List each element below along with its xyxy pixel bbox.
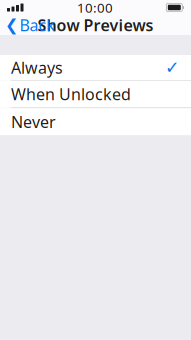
staticText: Always: [11, 57, 63, 78]
button[interactable]: ❮: [0, 11, 55, 39]
staticText: 10:00: [77, 0, 113, 16]
staticText: Show Previews: [37, 14, 153, 36]
button[interactable]: Never: [0, 108, 191, 135]
staticText: When Unlocked: [11, 83, 131, 105]
staticText: ✓: [165, 58, 180, 77]
button[interactable]: Always: [0, 55, 191, 80]
staticText: Back: [19, 14, 55, 36]
staticText: Never: [11, 111, 56, 132]
button[interactable]: When Unlocked: [0, 81, 191, 108]
staticText: ❮: [5, 16, 18, 34]
